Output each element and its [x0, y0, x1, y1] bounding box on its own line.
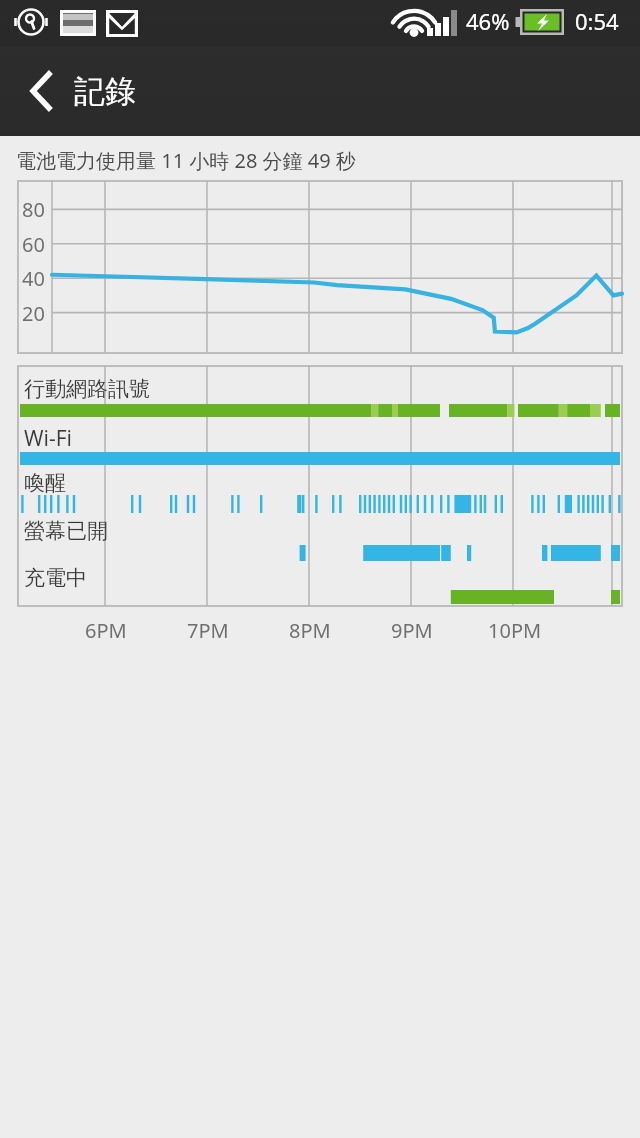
button[interactable]: Back	[8, 46, 74, 136]
button[interactable]: 記錄	[74, 46, 294, 136]
staticText: 行動網路訊號	[24, 376, 150, 402]
staticText: 40	[22, 265, 45, 292]
staticText: 8PM	[289, 617, 331, 644]
staticText: Wi-Fi	[24, 424, 73, 453]
staticText: 喚醒	[24, 470, 66, 496]
staticText: 80	[22, 196, 45, 223]
staticText: 充電中	[24, 565, 87, 591]
staticText: 46%	[466, 6, 510, 36]
staticText: 9PM	[391, 617, 433, 644]
staticText: 螢幕已開	[24, 518, 108, 544]
staticText: 7PM	[187, 617, 229, 644]
staticText: 0:54	[575, 6, 619, 36]
staticText: 6PM	[85, 617, 127, 644]
staticText: 20	[22, 300, 45, 327]
staticText: 10PM	[488, 617, 542, 644]
staticText: 電池電力使用量 11 小時 28 分鐘 49 秒	[16, 147, 356, 174]
staticText: 記錄	[74, 72, 136, 111]
staticText: 60	[22, 231, 45, 258]
